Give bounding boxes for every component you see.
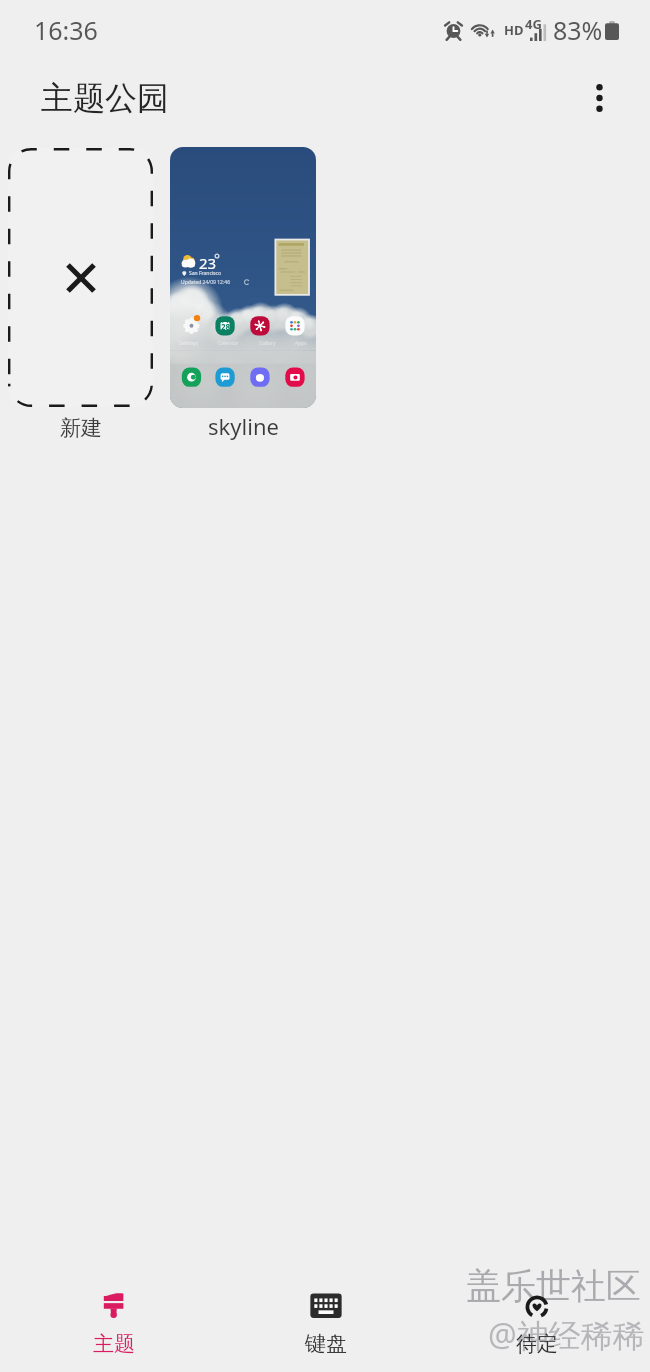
staticText: @神经稀稀 (488, 1313, 645, 1357)
staticText: Settings (179, 340, 199, 347)
staticText: 83% (553, 13, 603, 47)
staticText: 主题 (93, 1331, 135, 1357)
staticText: HD (504, 21, 524, 39)
staticText: Updated 24/09 12:46 (181, 279, 230, 286)
staticText: 主题公园 (41, 78, 169, 118)
staticText: San Francisco (189, 270, 221, 277)
button[interactable]: More options (575, 74, 623, 122)
staticText: 4G (525, 15, 542, 33)
staticText: 键盘 (305, 1331, 347, 1357)
staticText: Apps (295, 340, 307, 347)
staticText: 盖乐世社区 (466, 1264, 641, 1308)
button[interactable]: 23 (170, 147, 316, 441)
staticText: 16:36 (34, 13, 98, 47)
staticText: Calendar (218, 340, 240, 347)
staticText: 23 (199, 253, 217, 273)
staticText: 28 (221, 321, 231, 332)
button[interactable]: 新建 (8, 148, 153, 441)
staticText: Gallery (259, 340, 276, 347)
staticText: skyline (208, 411, 279, 441)
button[interactable]: 待定 (431, 1283, 642, 1365)
button[interactable]: 键盘 (220, 1283, 431, 1365)
staticText: 待定 (516, 1331, 558, 1357)
staticText: 新建 (60, 415, 102, 441)
button[interactable]: 主题 (8, 1283, 220, 1365)
